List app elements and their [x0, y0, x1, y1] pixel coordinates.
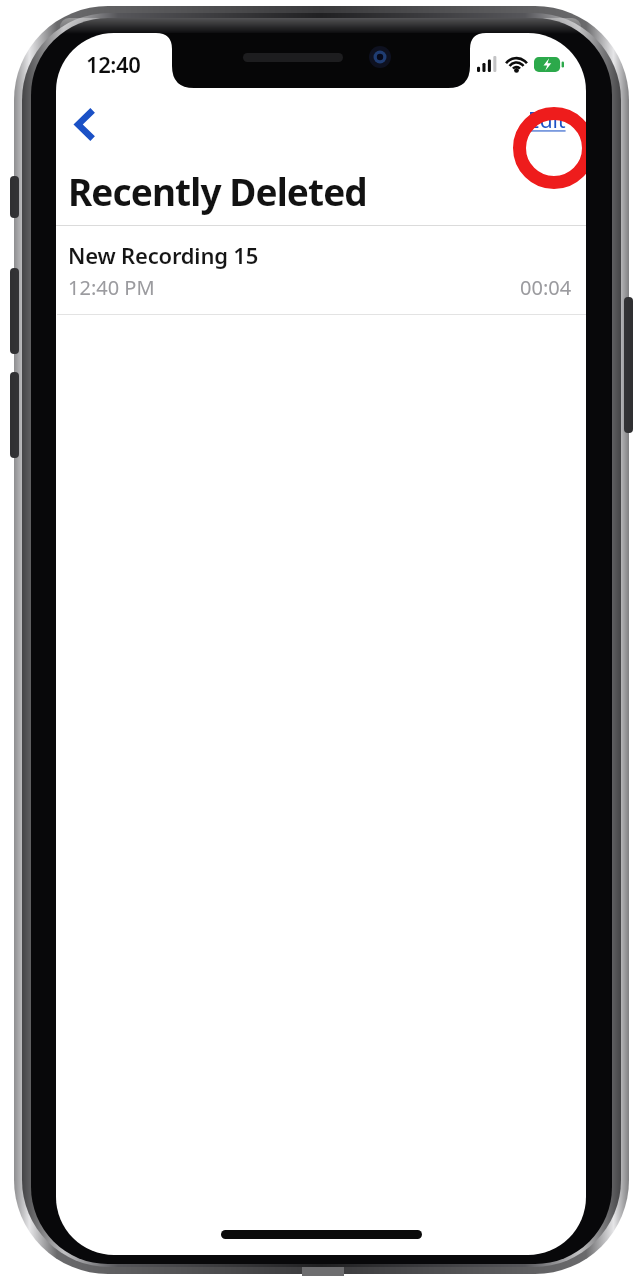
button[interactable]: Back — [58, 97, 112, 151]
staticText: 00:04 — [520, 274, 572, 301]
staticText: 12:40 PM — [68, 274, 155, 301]
staticText: New Recording 15 — [68, 240, 259, 270]
staticText: Edit — [528, 106, 566, 135]
button[interactable]: Edit — [520, 100, 574, 141]
staticText: 12:40 — [86, 49, 141, 79]
button[interactable]: New Recording 15 — [56, 226, 586, 314]
staticText: Recently Deleted — [68, 166, 367, 216]
